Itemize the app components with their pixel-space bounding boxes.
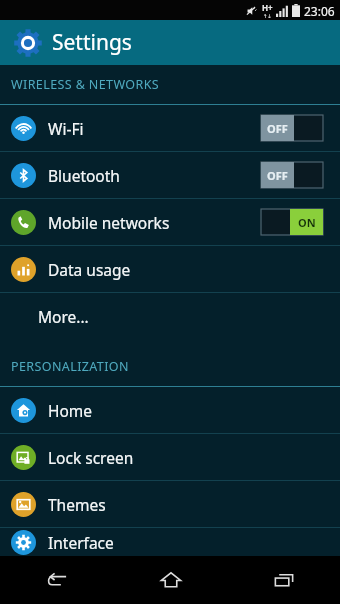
staticText: Home [48,400,93,421]
button[interactable]: Lock screen [0,434,340,480]
button[interactable]: Toggle off [260,161,324,189]
staticText: H+ [262,2,273,13]
staticText: Wi-Fi [48,118,84,139]
staticText: OFF [267,168,288,183]
button[interactable]: Wi-Fi [0,105,340,151]
staticText: Themes [48,494,106,515]
staticText: Bluetooth [48,165,120,186]
staticText: Data usage [48,259,131,280]
button[interactable]: Toggle off [260,114,324,142]
button[interactable]: Interface [0,528,340,556]
staticText: WIRELESS & NETWORKS [11,76,160,93]
button[interactable]: More... [0,293,340,339]
staticText: Settings [52,28,132,57]
button[interactable]: Back [0,556,114,604]
staticText: Interface [48,532,114,553]
staticText: 23:06 [304,3,335,19]
button[interactable]: Data usage [0,246,340,292]
button[interactable]: Home [114,556,227,604]
staticText: More... [38,306,89,327]
staticText: PERSONALIZATION [11,358,129,375]
button[interactable]: Home [0,387,340,433]
staticText: OFF [267,121,288,136]
button[interactable]: Bluetooth [0,152,340,198]
button[interactable]: Mobile networks [0,199,340,245]
button[interactable]: Themes [0,481,340,527]
button[interactable]: Toggle on [260,208,324,236]
button[interactable]: Recent apps [227,556,340,604]
staticText: Mobile networks [48,212,170,233]
staticText: Lock screen [48,447,134,468]
staticText: ↑↓ [263,13,272,19]
staticText: ON [298,215,316,230]
